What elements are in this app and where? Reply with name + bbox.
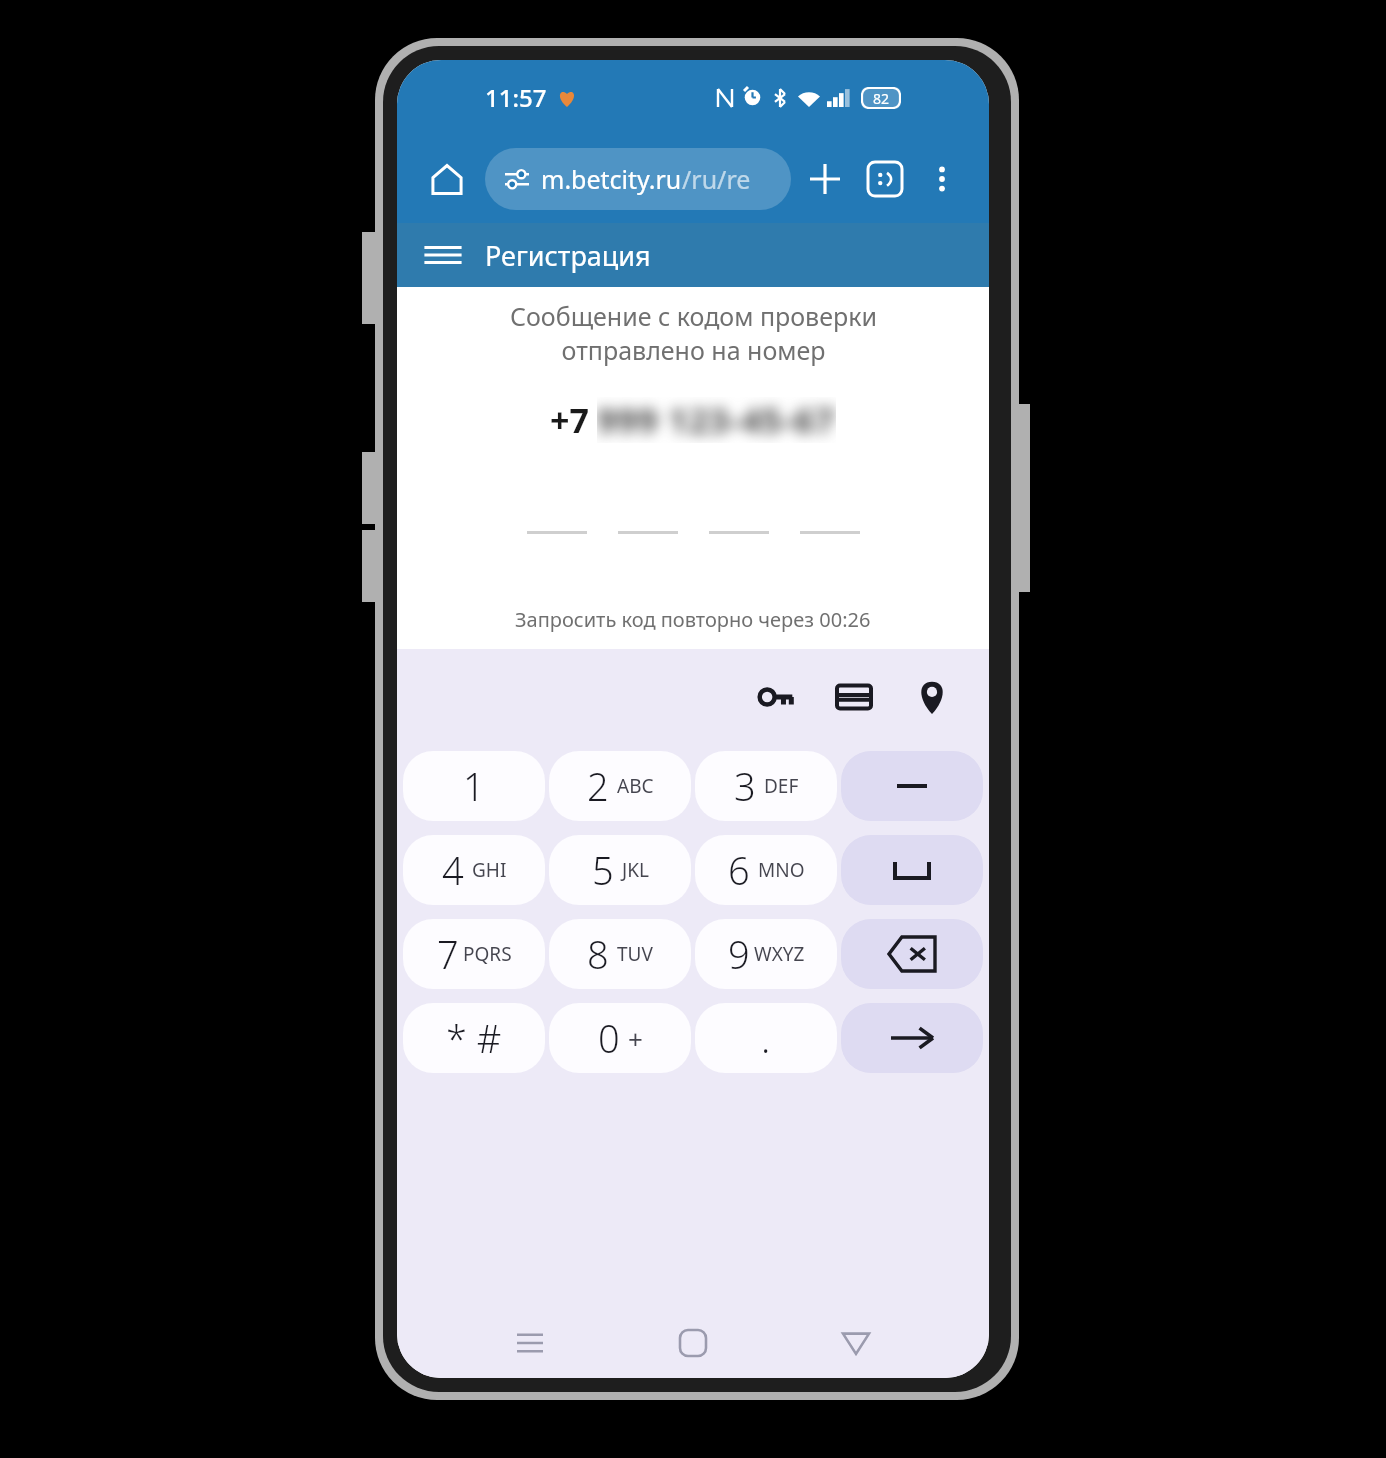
button[interactable]: Passwords [745,666,807,728]
button[interactable]: Backspace [841,919,983,989]
staticText: /ru/re [682,162,751,196]
button[interactable]: . [695,1003,837,1073]
button[interactable]: Tabs [859,153,911,205]
staticText: GHI [472,857,507,883]
staticText: +7 [550,397,589,443]
button[interactable]: 7 [403,919,545,989]
staticText: Запросить код повторно через 00:26 [515,606,871,633]
button[interactable]: Payment cards [823,666,885,728]
button[interactable]: Menu [417,229,469,281]
button[interactable]: More options [917,154,967,204]
button[interactable]: 1 [403,751,545,821]
staticText: 5 [592,844,614,896]
staticText: Регистрация [485,237,651,274]
button[interactable]: Home [419,151,475,207]
staticText: TUV [617,941,653,967]
staticText: 8 [587,928,609,980]
staticText: 0 [598,1012,620,1064]
button[interactable]: 5 [549,835,691,905]
staticText: 3 [734,760,756,812]
button[interactable]: Recents [500,1313,560,1373]
staticText: JKL [622,857,649,883]
button[interactable]: 6 [695,835,837,905]
button[interactable]: 2 [549,751,691,821]
staticText: 4 [442,844,464,896]
button[interactable]: New tab [799,153,851,205]
button[interactable]: * # [403,1003,545,1073]
button[interactable]: Space [841,835,983,905]
staticText: 11:57 [485,81,547,114]
staticText: + [628,1021,643,1056]
button[interactable]: 9 [695,919,837,989]
button[interactable]: 0 [549,1003,691,1073]
button[interactable]: m.betcity.ru [485,148,791,210]
staticText: MNO [758,857,805,883]
staticText: 1 [463,760,485,812]
staticText: ABC [617,773,654,799]
button[interactable]: Home [663,1313,723,1373]
staticText: m.betcity.ru [541,162,682,196]
staticText: 2 [587,760,609,812]
staticText: Сообщение с кодом проверки отправлено на… [510,299,877,367]
staticText: 82 [873,89,890,108]
staticText: PQRS [463,941,512,967]
staticText: 999 123-45-67 [597,397,836,443]
staticText: 9 [728,928,750,980]
button[interactable]: Dash [841,751,983,821]
button[interactable]: Enter [841,1003,983,1073]
button[interactable]: 4 [403,835,545,905]
staticText: DEF [764,773,799,799]
staticText: WXYZ [754,941,805,967]
button[interactable]: Back [826,1313,886,1373]
staticText: 6 [728,844,750,896]
staticText: 7 [437,928,459,980]
button[interactable]: Addresses [901,666,963,728]
button[interactable]: 8 [549,919,691,989]
button[interactable]: 3 [695,751,837,821]
staticText: . [761,1012,771,1064]
staticText: * # [446,1012,502,1064]
